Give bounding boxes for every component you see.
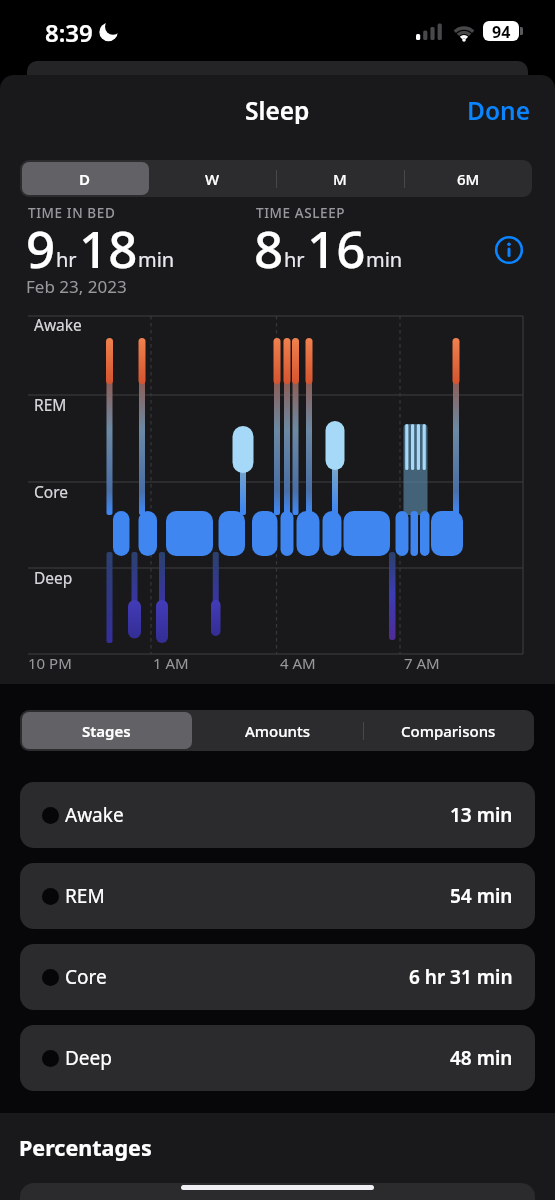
staticText: Comparisons (401, 721, 496, 741)
staticText: 6M (457, 169, 480, 189)
button[interactable]: Amounts (192, 710, 363, 751)
button[interactable]: Core (20, 944, 535, 1010)
button[interactable]: Comparisons (363, 710, 534, 751)
staticText: 10 PM (28, 653, 72, 673)
button[interactable]: Awake (20, 782, 535, 848)
button[interactable]: REM (20, 863, 535, 929)
staticText: 16 (307, 213, 366, 282)
staticText: 8:39 (45, 16, 93, 49)
staticText: 54 min (450, 883, 513, 909)
staticText: 4 AM (280, 653, 316, 673)
staticText: 48 min (450, 1045, 513, 1071)
staticText: 94 (492, 21, 511, 41)
button[interactable] (495, 236, 523, 264)
staticText: REM (34, 394, 67, 415)
staticText: Feb 23, 2023 (26, 275, 127, 298)
staticText: 6 hr 31 min (409, 964, 513, 990)
staticText: 9 (26, 213, 56, 282)
staticText: 1 AM (153, 653, 189, 673)
staticText: TIME ASLEEP (256, 204, 346, 222)
staticText: hr (56, 246, 77, 273)
staticText: Deep (65, 1045, 112, 1071)
staticText: W (205, 169, 220, 189)
staticText: min (138, 246, 175, 273)
staticText: hr (284, 246, 305, 273)
button[interactable]: 6M (404, 160, 532, 197)
staticText: M (333, 169, 347, 189)
staticText: 7 AM (404, 653, 440, 673)
staticText: Core (65, 964, 107, 990)
staticText: 8 (254, 213, 284, 282)
staticText: 13 min (450, 802, 513, 828)
staticText: Awake (65, 802, 124, 828)
staticText: TIME IN BED (28, 204, 116, 222)
button[interactable]: Stages (20, 710, 192, 751)
staticText: Stages (82, 721, 131, 741)
button[interactable]: W (148, 160, 276, 197)
staticText: Sleep (245, 94, 310, 124)
staticText: Awake (34, 314, 82, 335)
staticText: min (366, 246, 403, 273)
staticText: REM (65, 883, 105, 909)
staticText: 18 (79, 213, 138, 282)
staticText: Deep (34, 567, 73, 588)
staticText: Percentages (19, 1133, 152, 1162)
staticText: Done (467, 94, 531, 124)
staticText: Amounts (245, 721, 311, 741)
button[interactable]: Deep (20, 1025, 535, 1091)
staticText: Core (34, 481, 69, 502)
staticText: D (79, 169, 90, 189)
button[interactable]: D (20, 160, 148, 197)
button[interactable]: Done (467, 94, 531, 124)
button[interactable]: M (276, 160, 404, 197)
